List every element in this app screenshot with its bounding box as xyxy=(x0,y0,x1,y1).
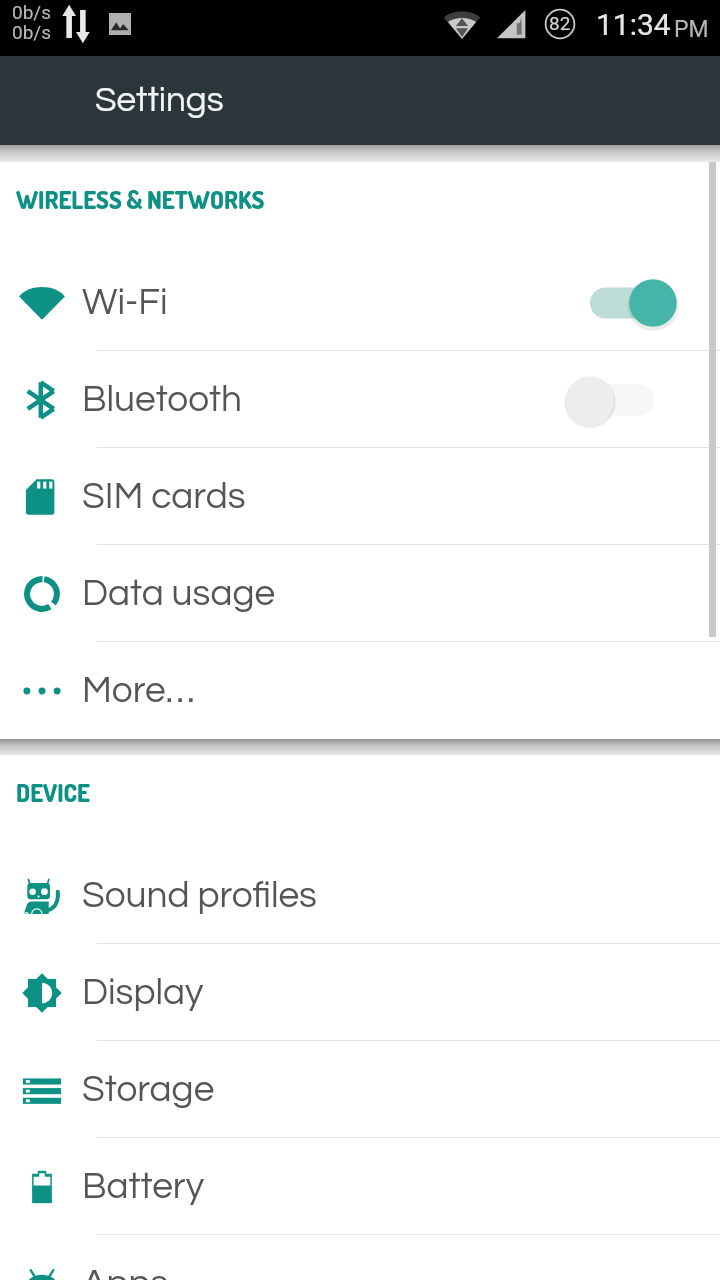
staticText: Settings xyxy=(95,82,224,118)
staticText: 82 xyxy=(549,12,571,34)
button[interactable]: More… xyxy=(0,642,720,739)
button[interactable]: Battery xyxy=(0,1138,720,1235)
staticText: Display xyxy=(82,974,204,1012)
button[interactable]: Data usage xyxy=(0,545,720,642)
staticText: Battery xyxy=(82,1168,205,1206)
other: Screenshot xyxy=(109,13,131,35)
button[interactable]: Wi-Fi xyxy=(0,254,720,351)
other: Wi-Fi signal xyxy=(443,9,481,39)
staticText: Storage xyxy=(82,1071,215,1109)
staticText: Apps xyxy=(82,1265,169,1280)
staticText: SIM cards xyxy=(82,478,246,516)
staticText: 0b/s xyxy=(12,21,51,43)
button[interactable]: Display xyxy=(0,944,720,1041)
button[interactable]: SIM cards xyxy=(0,448,720,545)
staticText: 11:34 xyxy=(596,7,671,42)
other: Network traffic xyxy=(62,4,90,44)
staticText: More… xyxy=(82,672,195,710)
staticText: Sound profiles xyxy=(82,877,317,915)
button[interactable]: Bluetooth xyxy=(0,351,720,448)
staticText: Data usage xyxy=(82,575,276,613)
button[interactable]: Sound profiles xyxy=(0,847,720,944)
staticText: PM xyxy=(674,16,709,43)
staticText: 0b/s xyxy=(12,1,51,23)
button[interactable]: Storage xyxy=(0,1041,720,1138)
staticText: Bluetooth xyxy=(82,381,243,419)
button[interactable]: Apps xyxy=(0,1235,720,1280)
other: Mobile signal xyxy=(495,8,528,41)
staticText: WIRELESS & NETWORKS xyxy=(16,184,265,214)
staticText: DEVICE xyxy=(16,777,90,807)
staticText: Wi-Fi xyxy=(82,284,168,322)
